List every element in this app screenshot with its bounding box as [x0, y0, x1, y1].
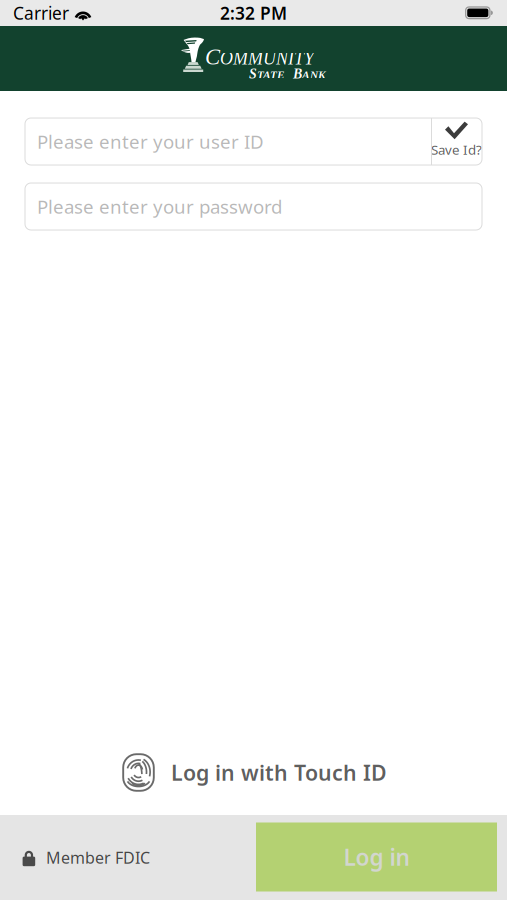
staticText: Member FDIC	[46, 847, 150, 868]
staticText: COMMUNITY	[205, 45, 314, 69]
staticText: Please enter your password	[37, 194, 282, 219]
button[interactable]: Save Id?	[431, 118, 482, 165]
staticText: STATE BANK	[249, 66, 326, 81]
staticText: Save Id?	[431, 141, 482, 158]
staticText: Please enter your user ID	[37, 129, 264, 154]
staticText: Log in	[343, 842, 409, 872]
staticText: 2:32 PM	[220, 1, 287, 24]
button[interactable]: Log in with Touch ID	[120, 752, 387, 793]
staticText: Log in with Touch ID	[171, 758, 387, 787]
staticText: Carrier	[13, 1, 69, 24]
button[interactable]: Log in	[256, 822, 497, 891]
